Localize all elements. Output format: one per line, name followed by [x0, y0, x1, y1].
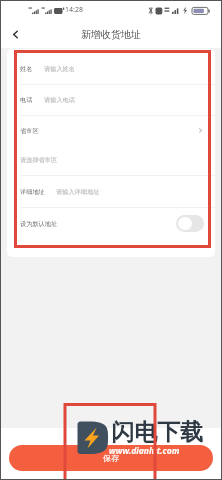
button[interactable]: 设为默认地址	[20, 208, 204, 239]
staticText: 请输入电话	[44, 96, 75, 104]
staticText: 请输入详细地址	[56, 188, 100, 196]
staticText: 姓名	[20, 65, 33, 73]
staticText: www.dianlut.com	[109, 445, 180, 457]
staticText: 设为默认地址	[20, 220, 58, 228]
staticText: 省市区	[20, 127, 39, 135]
staticText: 电话	[20, 96, 33, 104]
staticText: 14:28	[65, 5, 83, 15]
staticText: 闪电下载	[111, 418, 203, 447]
button[interactable]: 姓名	[20, 54, 205, 84]
button[interactable]: 电话	[20, 85, 205, 115]
staticText: 详细地址	[20, 188, 45, 196]
button[interactable]: 详细地址	[20, 176, 205, 207]
staticText: 新增收货地址	[81, 28, 141, 41]
staticText: 请选择省市区	[20, 156, 58, 164]
button[interactable]: 省市区	[7, 116, 215, 175]
staticText: 请输入姓名	[44, 65, 75, 73]
staticText: 保存	[103, 453, 119, 463]
button[interactable]: Back	[0, 20, 30, 48]
button[interactable]: 保存	[9, 445, 213, 471]
